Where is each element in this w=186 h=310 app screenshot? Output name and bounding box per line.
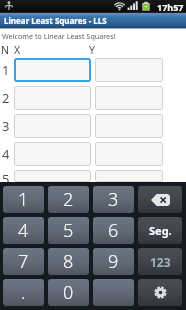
staticText: Linear Least Squares - LLS xyxy=(4,15,107,26)
button[interactable]: Value input xyxy=(95,58,163,82)
staticText: 0 xyxy=(63,280,74,305)
button[interactable]: 3 xyxy=(93,186,134,213)
staticText: 7 xyxy=(18,249,29,274)
staticText: 8 xyxy=(63,249,74,274)
staticText: 17h57 xyxy=(157,1,184,13)
button[interactable]: Value input xyxy=(95,86,163,110)
staticText: 1 xyxy=(18,187,29,212)
button[interactable]: Value input xyxy=(14,86,91,110)
button[interactable]: Value input xyxy=(95,170,163,182)
staticText: X xyxy=(14,43,21,56)
button[interactable]: 8 xyxy=(48,248,89,275)
staticText: 5 xyxy=(2,170,10,182)
button[interactable]: Value input xyxy=(14,142,91,166)
button[interactable]: 123 xyxy=(138,248,182,275)
button[interactable]: Value input xyxy=(95,114,163,138)
button[interactable]: Seg. xyxy=(138,217,182,244)
button[interactable]: 1 xyxy=(3,186,44,213)
button[interactable]: Value input xyxy=(14,170,91,182)
staticText: 4 xyxy=(2,145,10,163)
button[interactable]: 6 xyxy=(93,217,134,244)
button[interactable]: Backspace xyxy=(138,186,182,213)
button[interactable]: 9 xyxy=(93,248,134,275)
staticText: . xyxy=(21,280,26,305)
button[interactable]: . xyxy=(3,279,44,306)
staticText: 3 xyxy=(108,187,119,212)
staticText: 2 xyxy=(2,89,10,107)
button[interactable]: 0 xyxy=(48,279,89,306)
staticText: 9 xyxy=(108,249,119,274)
button[interactable]: 4 xyxy=(3,217,44,244)
staticText: 4 xyxy=(18,218,29,243)
staticText: N xyxy=(1,43,9,56)
button[interactable]: Value input xyxy=(14,58,91,82)
button[interactable]: Keyboard settings xyxy=(138,279,182,306)
button[interactable]: Value input xyxy=(95,142,163,166)
button[interactable]: 5 xyxy=(48,217,89,244)
button[interactable]: Blank xyxy=(93,279,134,306)
staticText: 2 xyxy=(63,187,74,212)
staticText: Y xyxy=(89,43,95,56)
staticText: Seg. xyxy=(149,223,172,238)
staticText: 3 xyxy=(2,117,10,135)
staticText: 123 xyxy=(150,254,171,270)
staticText: Welcome to Linear Least Squares! xyxy=(2,31,116,41)
button[interactable]: 2 xyxy=(48,186,89,213)
button[interactable]: Value input xyxy=(14,114,91,138)
staticText: 6 xyxy=(108,218,119,243)
button[interactable]: 7 xyxy=(3,248,44,275)
staticText: 5 xyxy=(63,218,74,243)
staticText: 1 xyxy=(2,61,10,79)
